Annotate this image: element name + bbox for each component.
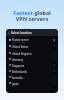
button[interactable]: Netherlands	[6, 68, 58, 74]
staticText: Netherlands	[12, 70, 27, 73]
button[interactable]: Japan	[6, 80, 58, 86]
button[interactable]: Singapore	[6, 62, 58, 68]
staticText: Select location	[11, 31, 32, 35]
staticText: United Kingdom	[12, 52, 32, 55]
staticText: Fastest global VPN servers	[13, 9, 51, 23]
staticText: Japan	[12, 82, 19, 85]
button[interactable]: United Kingdom	[6, 50, 58, 56]
staticText: Singapore	[12, 64, 25, 67]
button[interactable]: Fastest server	[6, 37, 58, 43]
staticText: Fastest server	[12, 38, 29, 41]
staticText: Germany	[12, 58, 23, 61]
button[interactable]: Australia	[6, 74, 58, 80]
button[interactable]: Back	[6, 29, 58, 36]
staticText: Auto selected	[12, 41, 26, 44]
other: Back	[8, 32, 10, 34]
staticText: United States	[12, 45, 29, 48]
button[interactable]: United States	[6, 43, 58, 49]
button[interactable]: Germany	[6, 56, 58, 62]
staticText: Australia	[12, 76, 23, 79]
